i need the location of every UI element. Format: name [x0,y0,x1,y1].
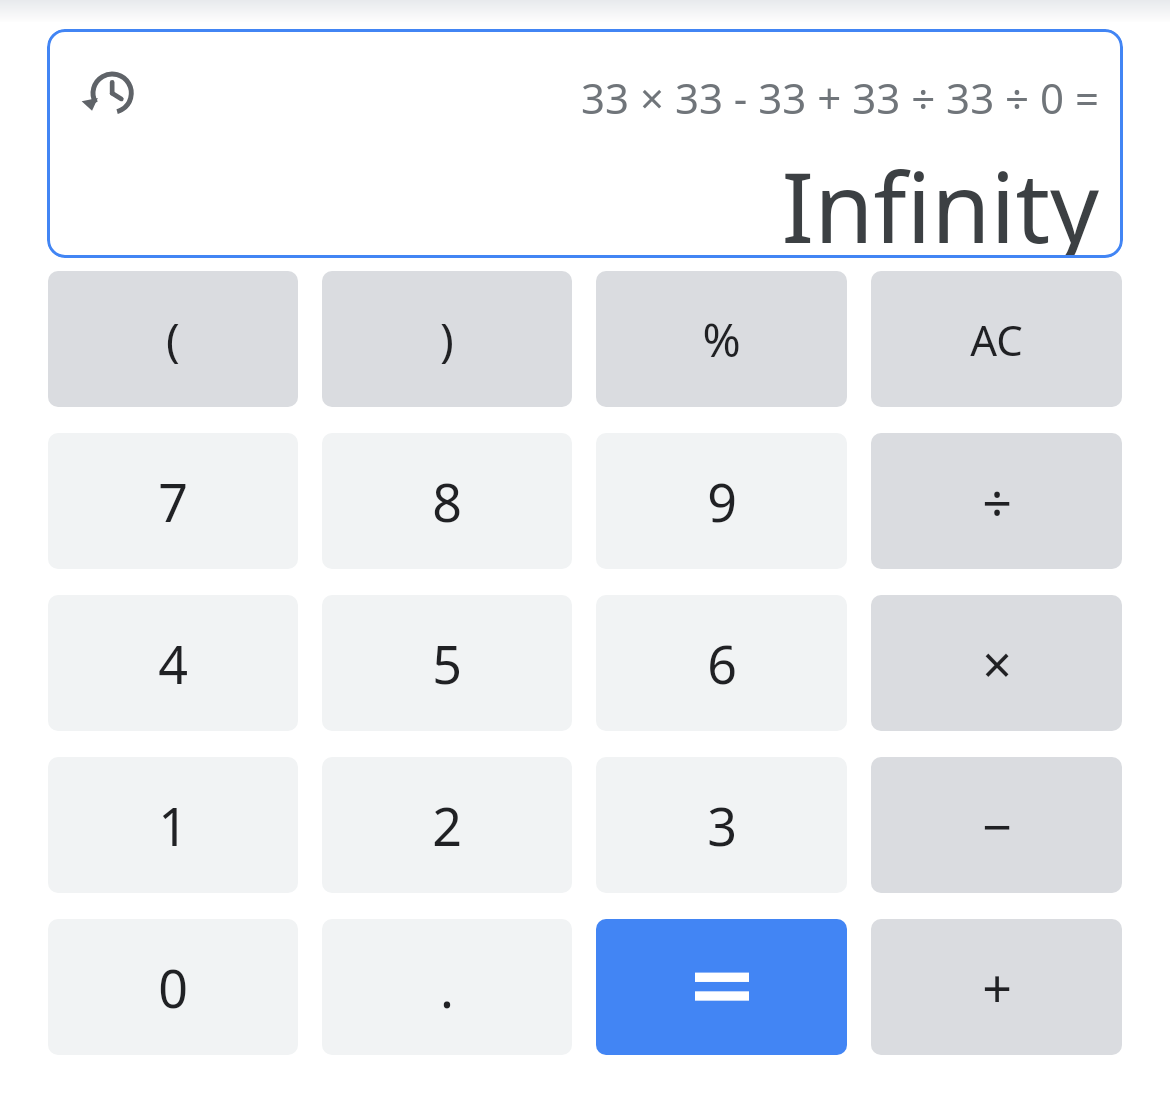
button[interactable]: 0 [48,919,298,1055]
button[interactable]: ) [322,271,572,407]
staticText: 1 [158,790,188,861]
staticText: 2 [432,790,462,861]
staticText: 7 [158,466,188,537]
button[interactable]: 3 [596,757,847,893]
staticText: . [440,952,454,1023]
staticText: − [982,790,1012,861]
staticText: 8 [432,466,462,537]
button[interactable] [596,919,847,1055]
staticText: ÷ [982,466,1012,537]
staticText: ) [440,308,454,371]
button[interactable]: AC [871,271,1122,407]
button[interactable]: × [871,595,1122,731]
button[interactable]: 5 [322,595,572,731]
button[interactable]: − [871,757,1122,893]
staticText: 0 [158,952,188,1023]
button[interactable]: 4 [48,595,298,731]
staticText: 6 [707,628,737,699]
button[interactable]: + [871,919,1122,1055]
staticText: Infinity [781,140,1099,258]
staticText: ( [166,308,180,371]
button[interactable]: ( [48,271,298,407]
staticText: 5 [432,628,462,699]
staticText: 4 [158,628,188,699]
button[interactable]: History [80,61,142,123]
button[interactable]: . [322,919,572,1055]
staticText: % [702,308,741,371]
button[interactable]: ÷ [871,433,1122,569]
staticText: × [982,628,1012,699]
button[interactable]: % [596,271,847,407]
staticText: 33 × 33 - 33 + 33 ÷ 33 ÷ 0 = [580,69,1099,126]
staticText: AC [970,311,1023,368]
button[interactable]: 6 [596,595,847,731]
staticText: 3 [707,790,737,861]
staticText: + [982,952,1012,1023]
button[interactable]: 7 [48,433,298,569]
button[interactable]: 8 [322,433,572,569]
button[interactable]: 2 [322,757,572,893]
button[interactable]: 9 [596,433,847,569]
staticText: 9 [707,466,737,537]
button[interactable]: 1 [48,757,298,893]
